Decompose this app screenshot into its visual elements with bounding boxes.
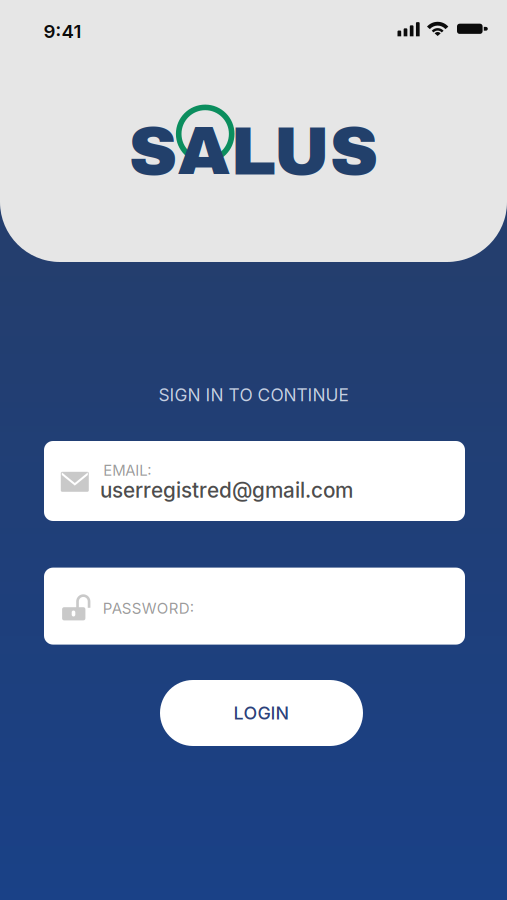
staticText: userregistred@gmail.com — [100, 478, 353, 503]
button[interactable]: LOGIN — [160, 680, 363, 746]
button[interactable]: EMAIL: — [44, 441, 465, 521]
staticText: PASSWORD: — [103, 599, 194, 617]
button[interactable]: PASSWORD: — [44, 568, 465, 645]
staticText: SIGN IN TO CONTINUE — [158, 384, 348, 405]
staticText: EMAIL: — [103, 461, 151, 479]
staticText: 9:41 — [44, 20, 82, 42]
staticText: LOGIN — [233, 702, 289, 724]
staticText: SALUS — [128, 115, 378, 189]
